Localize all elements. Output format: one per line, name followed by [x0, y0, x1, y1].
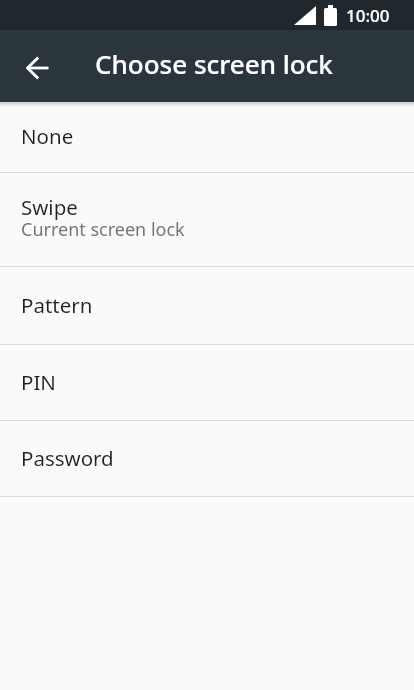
- staticText: 10:00: [346, 4, 390, 27]
- staticText: PIN: [21, 368, 56, 396]
- button[interactable]: Pattern: [0, 267, 414, 344]
- staticText: Pattern: [21, 291, 93, 319]
- staticText: Swipe: [21, 193, 78, 221]
- staticText: Current screen lock: [21, 217, 185, 242]
- button[interactable]: PIN: [0, 345, 414, 420]
- staticText: Choose screen lock: [95, 46, 333, 81]
- button[interactable]: Swipe: [0, 173, 414, 266]
- button[interactable]: None: [0, 102, 414, 172]
- staticText: None: [21, 122, 74, 150]
- button[interactable]: [26, 56, 50, 80]
- button[interactable]: Password: [0, 421, 414, 496]
- staticText: Password: [21, 444, 114, 472]
